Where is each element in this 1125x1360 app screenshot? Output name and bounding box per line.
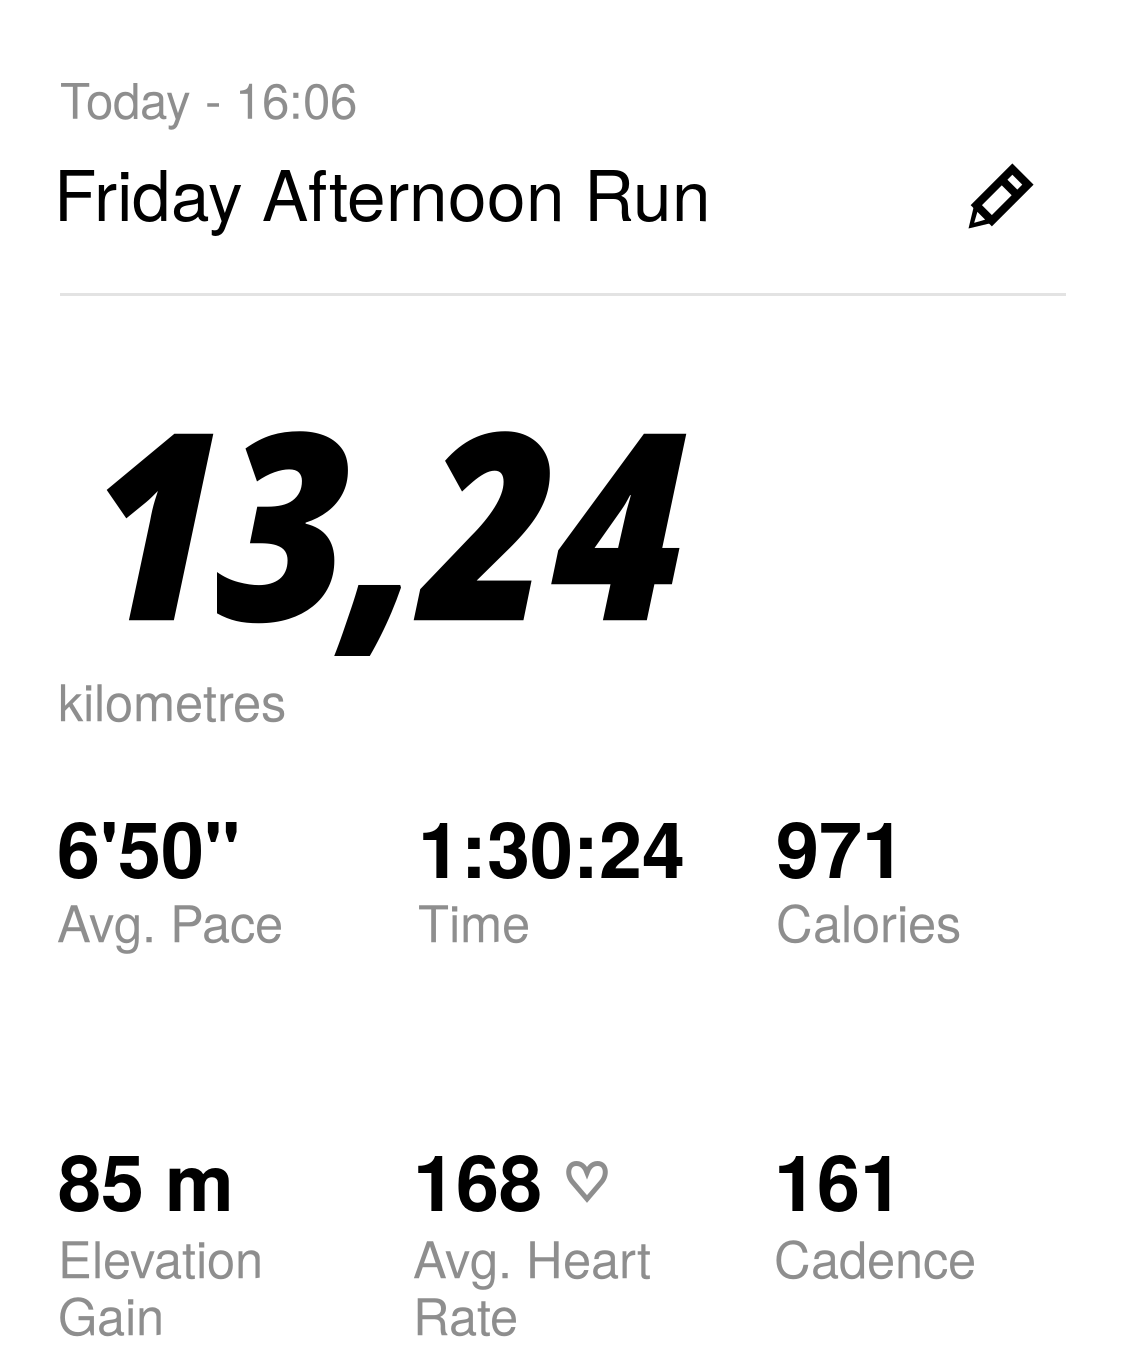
staticText: 6'50'' <box>57 791 240 902</box>
staticText: Today - 16:06 <box>60 62 357 133</box>
button[interactable]: Friday Afternoon Run <box>60 141 1032 241</box>
staticText: 168 <box>413 1124 542 1235</box>
staticText: Gain <box>58 1277 164 1350</box>
staticText: 13,24 <box>85 341 685 697</box>
staticText: Time <box>418 884 530 957</box>
staticText: 85 m <box>58 1124 234 1235</box>
staticText: 161 <box>774 1124 903 1235</box>
staticText: Cadence <box>774 1220 976 1293</box>
staticText: Rate <box>413 1277 518 1350</box>
staticText: 971 <box>776 791 905 902</box>
staticText: Calories <box>776 884 961 957</box>
staticText: Elevation <box>58 1220 263 1293</box>
staticText: 1:30:24 <box>418 791 685 902</box>
button[interactable]: Rename activity <box>970 160 1032 222</box>
staticText: kilometres <box>58 663 286 736</box>
staticText: Friday Afternoon Run <box>54 141 711 241</box>
staticText: Avg. Heart <box>413 1220 651 1293</box>
staticText: Avg. Pace <box>57 884 283 957</box>
